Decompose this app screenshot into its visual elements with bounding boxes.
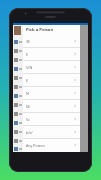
- other: Open 3E: [73, 39, 77, 43]
- button[interactable]: 6E: [23, 100, 80, 112]
- other: Open 5/N: [73, 65, 77, 69]
- other: Open N: [73, 91, 77, 95]
- staticText: 5/N: [26, 65, 73, 70]
- button[interactable]: E: [23, 74, 80, 86]
- button[interactable]: Pick a Poison: [23, 25, 80, 35]
- staticText: 3E: [26, 39, 73, 44]
- other: Open 6E: [73, 104, 77, 108]
- button[interactable]: 3E: [23, 35, 80, 47]
- button[interactable]: Any Poison: [23, 139, 80, 151]
- button[interactable]: b/s/: [23, 126, 80, 138]
- staticText: b/s/: [26, 130, 73, 135]
- button[interactable]: N: [23, 87, 80, 99]
- other: Open E: [73, 78, 77, 82]
- staticText: Pick a Poison: [26, 27, 54, 33]
- button[interactable]: 5/N: [23, 61, 80, 73]
- button[interactable]: E: [23, 48, 80, 60]
- other: Open b/s/: [73, 130, 77, 134]
- other: Open 5c: [73, 117, 77, 121]
- staticText: N: [26, 91, 73, 96]
- staticText: E: [26, 52, 73, 57]
- other: Open E: [73, 52, 77, 56]
- staticText: E: [26, 78, 73, 83]
- other: Open Any Poison: [73, 143, 77, 147]
- staticText: 5c: [26, 117, 73, 122]
- staticText: Any Poison: [26, 143, 73, 148]
- staticText: 6E: [26, 104, 73, 109]
- button[interactable]: 5c: [23, 113, 80, 125]
